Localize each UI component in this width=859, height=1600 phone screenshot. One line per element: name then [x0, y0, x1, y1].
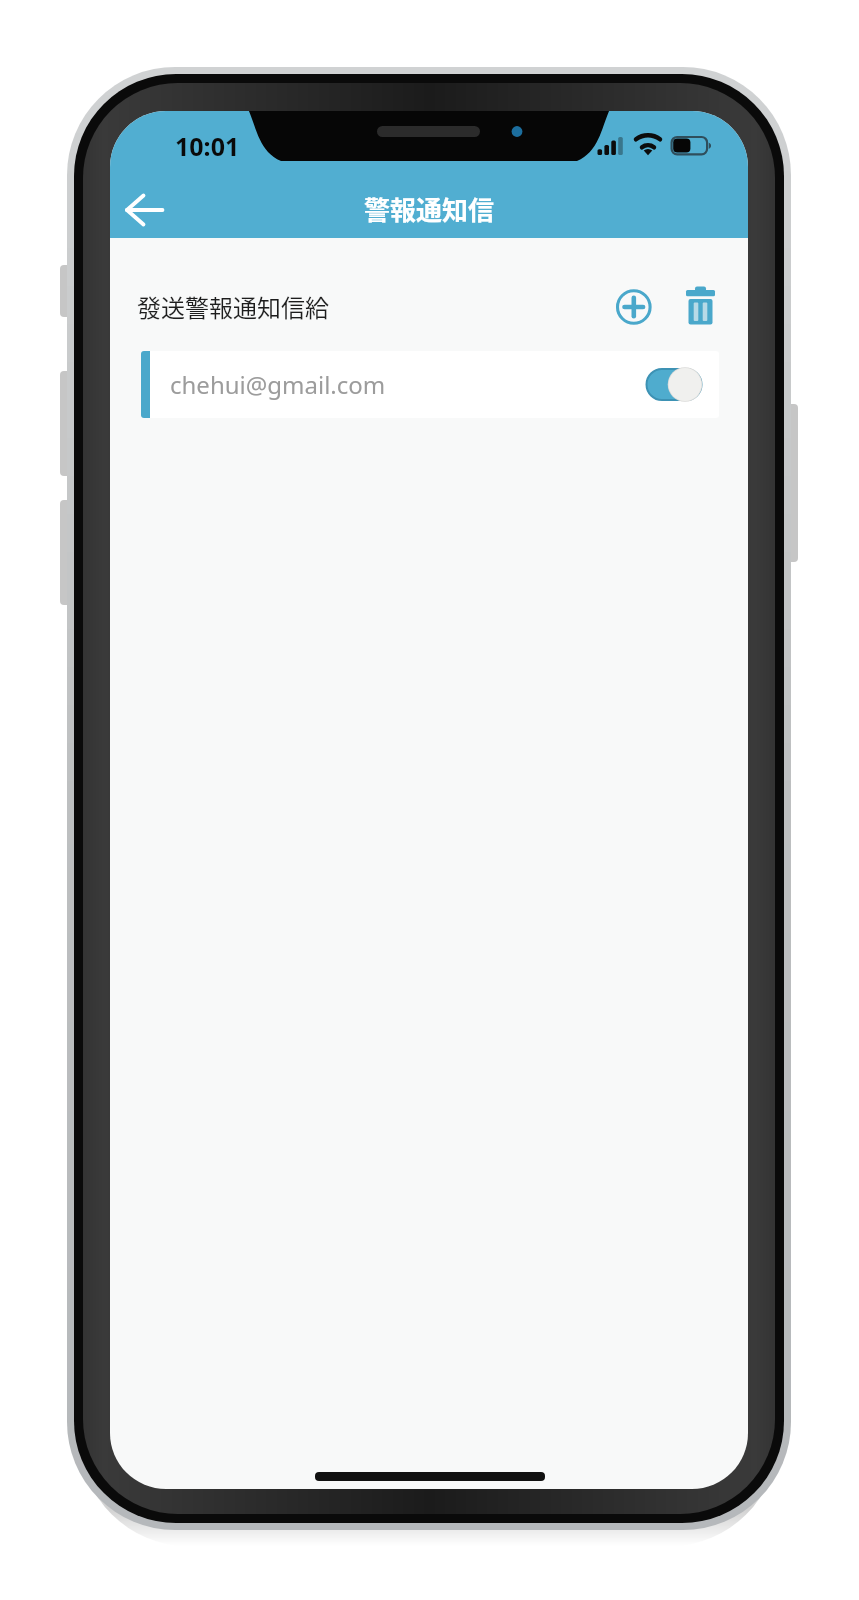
staticText: 發送警報通知信給	[137, 289, 329, 324]
staticText: 警報通知信	[364, 190, 495, 228]
staticText: chehui@gmail.com	[170, 368, 386, 401]
button[interactable]	[679, 285, 723, 329]
button[interactable]	[636, 364, 702, 405]
button[interactable]: chehui@gmail.com	[141, 351, 719, 418]
button[interactable]	[612, 285, 656, 329]
staticText: 10:01	[175, 129, 240, 163]
button[interactable]	[118, 186, 170, 234]
